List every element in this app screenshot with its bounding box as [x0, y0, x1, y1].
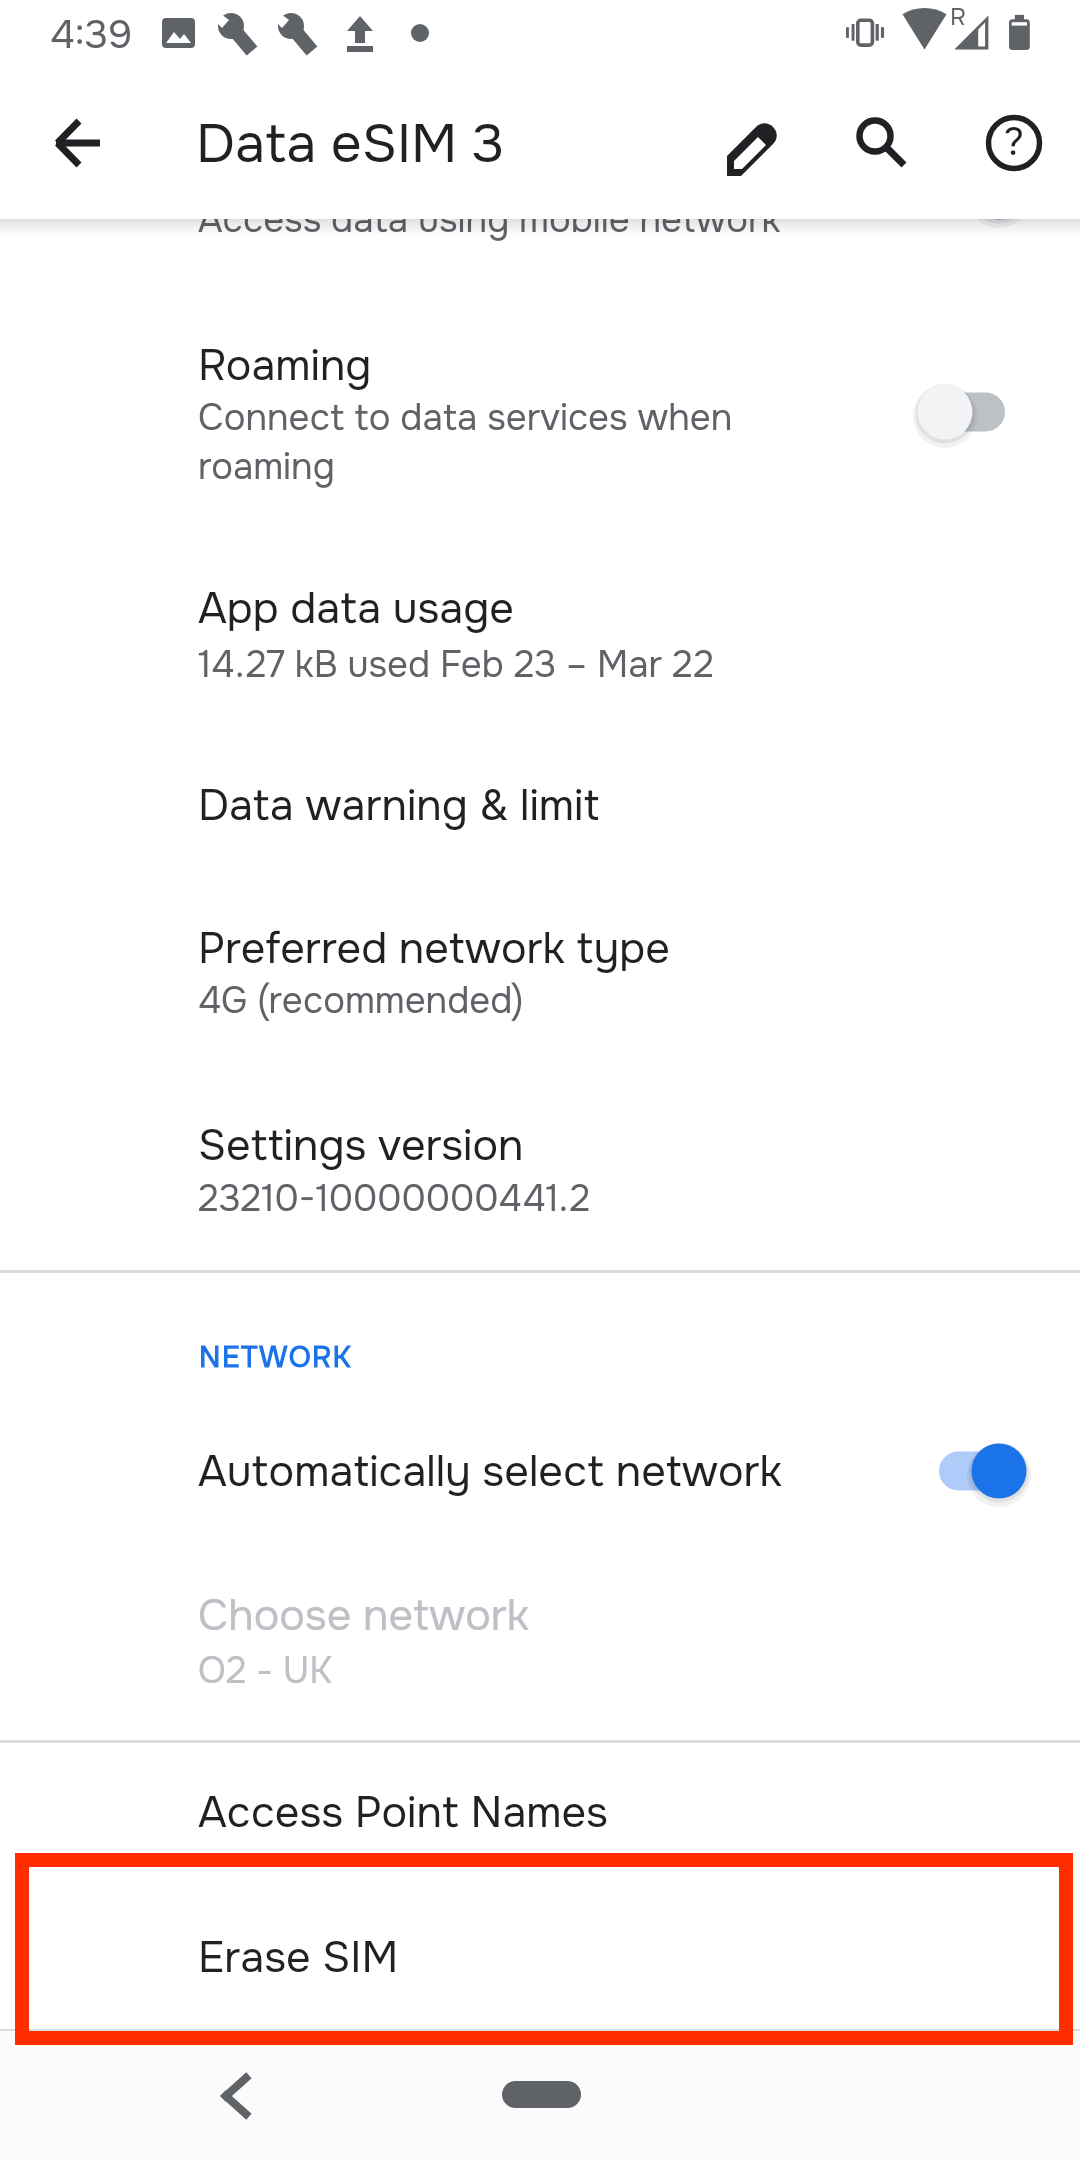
staticText: Preferred network type: [198, 921, 670, 976]
button[interactable]: NETWORK: [199, 1339, 353, 1376]
button[interactable]: Home: [502, 2081, 581, 2108]
staticText: App data usage: [198, 581, 514, 636]
staticText: ?: [1004, 117, 1025, 167]
staticText: 23210-10000000441.2: [198, 1176, 998, 1223]
button[interactable]: Choose network: [0, 1553, 1080, 1743]
button[interactable]: Preferred network type: [0, 886, 1080, 1076]
button[interactable]: Search: [838, 98, 928, 188]
button[interactable]: Help: [974, 98, 1064, 188]
button[interactable]: Roaming: [0, 303, 1080, 518]
button[interactable]: Access data using mobile network: [0, 150, 1080, 300]
staticText: Settings version: [198, 1118, 524, 1173]
button[interactable]: App data usage: [0, 546, 1080, 736]
staticText: Data warning & limit: [198, 778, 600, 833]
staticText: Access Point Names: [198, 1785, 609, 1840]
staticText: Erase SIM: [198, 1930, 399, 1985]
button[interactable]: Automatically select network: [0, 1409, 1080, 1553]
button[interactable]: Roaming: [905, 372, 1045, 452]
button[interactable]: Automatically select network: [905, 1431, 1045, 1511]
button[interactable]: Settings version: [0, 1083, 1080, 1273]
staticText: Automatically select network: [198, 1444, 782, 1499]
staticText: Roaming: [198, 338, 372, 393]
staticText: R: [950, 2, 966, 33]
button[interactable]: Mobile data: [905, 152, 1045, 232]
button[interactable]: Erase SIM: [0, 1895, 1080, 2039]
button[interactable]: Back: [192, 2051, 282, 2141]
staticText: Data eSIM 3: [196, 110, 505, 179]
button[interactable]: Back: [34, 99, 122, 187]
staticText: 4:39: [50, 10, 133, 60]
staticText: 14.27 kB used Feb 23 – Mar 22: [198, 642, 998, 689]
button[interactable]: Edit: [705, 98, 795, 188]
staticText: Access data using mobile network: [198, 197, 781, 244]
staticText: O2 - UK: [198, 1648, 998, 1695]
staticText: 4G (recommended): [198, 978, 998, 1025]
button[interactable]: Access Point Names: [0, 1750, 1080, 1894]
button[interactable]: Data warning & limit: [0, 743, 1080, 887]
staticText: Choose network: [198, 1588, 530, 1643]
staticText: Connect to data services when roaming: [198, 395, 763, 490]
